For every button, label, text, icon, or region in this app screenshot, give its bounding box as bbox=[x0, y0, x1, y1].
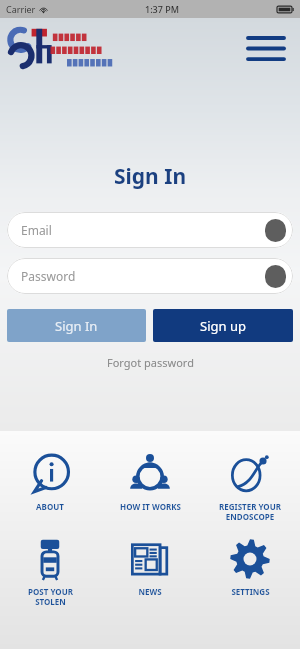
staticText: Sign In bbox=[55, 317, 98, 335]
button[interactable]: Sign up bbox=[153, 309, 293, 342]
button[interactable]: Password bbox=[7, 258, 293, 294]
button[interactable]: HOW IT WORKS bbox=[100, 453, 200, 512]
button[interactable]: Email bbox=[7, 212, 293, 248]
staticText: REGISTER YOUR ENDOSCOPE bbox=[219, 501, 281, 522]
staticText: ABOUT bbox=[36, 501, 64, 512]
staticText: SETTINGS bbox=[231, 586, 270, 597]
staticText: Forgot password bbox=[107, 355, 194, 370]
staticText: POST YOUR STOLEN bbox=[28, 586, 73, 607]
staticText: Sign In bbox=[0, 162, 300, 191]
button[interactable]: POST YOUR STOLEN bbox=[0, 538, 100, 607]
staticText: Carrier bbox=[6, 3, 36, 15]
staticText: Password bbox=[21, 268, 76, 284]
button[interactable]: Forgot password bbox=[0, 355, 300, 370]
button[interactable]: NEWS bbox=[100, 538, 200, 597]
staticText: Sign up bbox=[200, 317, 246, 335]
button[interactable]: REGISTER YOUR ENDOSCOPE bbox=[200, 453, 300, 522]
button[interactable]: ABOUT bbox=[0, 453, 100, 512]
button[interactable]: Stolen Endoscope Registry logo bbox=[8, 24, 126, 72]
button[interactable]: SETTINGS bbox=[200, 538, 300, 597]
staticText: HOW IT WORKS bbox=[120, 501, 181, 512]
staticText: 1:37 PM bbox=[145, 3, 179, 15]
button[interactable]: Sign In bbox=[7, 309, 146, 342]
staticText: NEWS bbox=[138, 586, 162, 597]
button[interactable]: Menu bbox=[244, 26, 288, 70]
staticText: Email bbox=[21, 222, 52, 238]
